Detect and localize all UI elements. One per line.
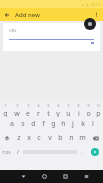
button[interactable]: 5 [43, 103, 53, 117]
button[interactable]: 3 [22, 103, 33, 117]
button[interactable]: Back [0, 8, 13, 21]
staticText: w [14, 109, 20, 117]
staticText: x [27, 133, 31, 143]
button[interactable]: Back [12, 170, 34, 183]
button[interactable]: v [44, 131, 55, 145]
button[interactable]: URL [3, 23, 100, 51]
button[interactable]: Save [84, 18, 96, 30]
staticText: u [66, 109, 71, 117]
button[interactable]: m [77, 131, 88, 145]
staticText: t [47, 109, 50, 117]
staticText: URL [9, 28, 17, 33]
button[interactable]: 6 [53, 103, 63, 117]
button[interactable]: d [28, 117, 38, 131]
button[interactable]: g [48, 117, 58, 131]
staticText: / [17, 149, 19, 156]
button[interactable]: x [24, 131, 34, 145]
staticText: m [79, 133, 86, 143]
button[interactable]: Space [23, 149, 77, 155]
staticText: Add new [15, 11, 40, 19]
staticText: 7 [67, 103, 70, 108]
button[interactable]: 7 [63, 103, 73, 117]
staticText: 5 [47, 103, 50, 108]
staticText: q [3, 109, 8, 117]
button[interactable]: Enter [87, 145, 103, 159]
staticText: 10:10 [90, 2, 101, 7]
button[interactable]: ?123 [0, 145, 13, 159]
button[interactable]: 8 [73, 103, 83, 117]
staticText: h [61, 119, 66, 129]
staticText: y [56, 109, 60, 117]
staticText: n [69, 133, 74, 143]
staticText: ?123 [2, 150, 11, 155]
staticText: f [42, 119, 45, 129]
staticText: 3 [27, 103, 30, 108]
button[interactable]: More options [90, 8, 103, 21]
button[interactable]: z [14, 131, 24, 145]
staticText: 0 [97, 103, 100, 108]
button[interactable]: Screenshot [76, 170, 97, 183]
staticText: r [37, 109, 40, 117]
staticText: 2 [16, 103, 19, 108]
button[interactable]: b [55, 131, 66, 145]
button[interactable]: k [78, 117, 88, 131]
staticText: a [10, 119, 14, 129]
staticText: 6 [57, 103, 60, 108]
staticText: c [37, 133, 41, 143]
staticText: 1 [4, 103, 7, 108]
staticText: s [21, 119, 25, 129]
button[interactable]: 9 [83, 103, 93, 117]
staticText: . [81, 149, 83, 156]
button[interactable]: h [58, 117, 68, 131]
staticText: j [72, 119, 74, 129]
button[interactable]: c [34, 131, 44, 145]
staticText: l [92, 119, 94, 129]
button[interactable]: s [17, 117, 28, 131]
button[interactable]: n [66, 131, 77, 145]
staticText: b [58, 133, 63, 143]
button[interactable]: Home [34, 170, 55, 183]
staticText: 4 [37, 103, 40, 108]
staticText: 8 [77, 103, 80, 108]
staticText: p [96, 109, 101, 117]
button[interactable]: / [13, 145, 23, 159]
button[interactable]: . [77, 145, 87, 159]
staticText: o [86, 109, 91, 117]
button[interactable]: 2 [11, 103, 22, 117]
button[interactable]: 4 [33, 103, 43, 117]
staticText: 9 [87, 103, 90, 108]
button[interactable]: l [88, 117, 98, 131]
staticText: i [78, 109, 80, 117]
staticText: e [26, 109, 30, 117]
button[interactable]: f [38, 117, 48, 131]
staticText: g [51, 119, 56, 129]
staticText: k [81, 119, 85, 129]
button[interactable]: 0 [93, 103, 103, 117]
button[interactable]: j [68, 117, 78, 131]
button[interactable]: Recent apps [55, 170, 76, 183]
button[interactable]: a [6, 117, 17, 131]
button[interactable]: 1 [0, 103, 11, 117]
staticText: d [31, 119, 36, 129]
button[interactable]: Backspace [88, 131, 103, 145]
button[interactable]: Shift [0, 131, 14, 145]
staticText: z [17, 133, 21, 143]
staticText: v [48, 133, 52, 143]
